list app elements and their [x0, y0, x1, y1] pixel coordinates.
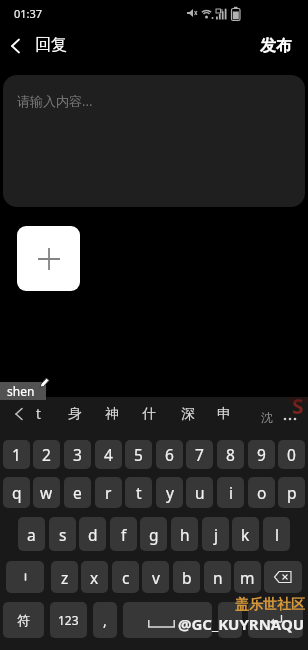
staticText: f [121, 524, 127, 545]
staticText: w [40, 482, 53, 503]
staticText: g [149, 524, 159, 545]
button[interactable]: w [33, 477, 60, 508]
staticText: c [122, 567, 130, 588]
button[interactable] [264, 561, 302, 593]
button[interactable] [123, 602, 212, 638]
staticText: j [214, 524, 218, 545]
button[interactable]: 0 [278, 440, 305, 469]
button[interactable]: u [186, 477, 213, 508]
button[interactable]: 申 [211, 402, 237, 425]
button[interactable]: a [18, 517, 45, 551]
button[interactable]: e [64, 477, 91, 508]
button[interactable]: h [171, 517, 198, 551]
staticText: 神 [105, 405, 119, 422]
button[interactable]: y [156, 477, 183, 508]
staticText: 01:37 [14, 6, 43, 21]
staticText: h [180, 524, 190, 545]
staticText: e [73, 482, 82, 503]
staticText: 请输入内容... [17, 92, 93, 110]
staticText: u [195, 482, 205, 503]
staticText: n [213, 567, 223, 588]
staticText: , [103, 611, 107, 630]
button[interactable]: 5 [125, 440, 152, 469]
button[interactable]: 9 [248, 440, 275, 469]
button[interactable]: 发布 [242, 30, 292, 62]
button[interactable]: 4 [95, 440, 122, 469]
staticText: 6 [165, 444, 174, 465]
button[interactable]: . [218, 602, 242, 638]
staticText: 符 [17, 612, 30, 628]
staticText: @GC_KUYRNAQU [178, 614, 305, 634]
button[interactable]: 身 [62, 402, 88, 425]
staticText: m [240, 567, 255, 588]
staticText: S [292, 392, 304, 421]
staticText: 身 [68, 405, 82, 422]
staticText: p [287, 482, 297, 503]
button[interactable]: j [202, 517, 229, 551]
staticText: 2 [42, 444, 51, 465]
staticText: o [257, 482, 267, 503]
button[interactable]: t [25, 402, 51, 425]
staticText: 发布 [260, 36, 292, 56]
staticText: i [229, 482, 233, 503]
staticText: 什 [142, 405, 156, 422]
button[interactable]: f [110, 517, 137, 551]
staticText: d [88, 524, 98, 545]
button[interactable]: l [263, 517, 290, 551]
staticText: 9 [257, 444, 266, 465]
button[interactable]: n [204, 561, 231, 593]
button[interactable] [6, 561, 44, 593]
button[interactable]: , [93, 602, 117, 638]
button[interactable]: 3 [64, 440, 91, 469]
button[interactable]: 6 [156, 440, 183, 469]
button[interactable]: b [173, 561, 200, 593]
button[interactable]: g [140, 517, 167, 551]
staticText: k [241, 524, 250, 545]
button[interactable]: 神 [99, 402, 125, 425]
staticText: q [12, 482, 22, 503]
staticText: x [90, 567, 99, 588]
staticText: v [152, 567, 160, 588]
staticText: 1 [12, 444, 21, 465]
button[interactable]: i [217, 477, 244, 508]
staticText: 回复 [35, 35, 67, 55]
button[interactable]: k [232, 517, 259, 551]
button[interactable]: q [3, 477, 30, 508]
button[interactable]: d [79, 517, 106, 551]
button[interactable]: 2 [33, 440, 60, 469]
button[interactable]: 回复 [0, 30, 110, 62]
button[interactable]: x [81, 561, 108, 593]
staticText: 沈 [261, 410, 273, 425]
staticText: 7 [195, 444, 204, 465]
button[interactable]: 7 [186, 440, 213, 469]
staticText: 申 [217, 405, 231, 422]
staticText: t [36, 405, 41, 423]
button[interactable]: c [112, 561, 139, 593]
button[interactable]: 8 [217, 440, 244, 469]
button[interactable]: 什 [136, 402, 162, 425]
button[interactable]: z [51, 561, 78, 593]
button[interactable]: 123 [50, 602, 87, 638]
button[interactable]: p [278, 477, 305, 508]
button[interactable]: m [234, 561, 261, 593]
button[interactable]: 1 [3, 440, 30, 469]
staticText: 4 [104, 444, 113, 465]
staticText: b [182, 567, 192, 588]
button[interactable]: r [95, 477, 122, 508]
button[interactable]: t [125, 477, 152, 508]
staticText: shen [7, 383, 35, 399]
staticText: . [228, 611, 232, 629]
button[interactable]: o [248, 477, 275, 508]
button[interactable]: v [142, 561, 169, 593]
button[interactable]: 请输入内容... [3, 75, 305, 207]
button[interactable]: 深 [175, 402, 201, 425]
staticText: 3 [73, 444, 82, 465]
button[interactable]: s [49, 517, 76, 551]
staticText: z [61, 567, 69, 588]
button[interactable]: 符 [3, 602, 44, 638]
button[interactable] [248, 602, 303, 638]
staticText: t [136, 482, 142, 503]
staticText: s [59, 524, 67, 545]
button[interactable] [17, 226, 80, 291]
staticText: r [105, 482, 112, 503]
